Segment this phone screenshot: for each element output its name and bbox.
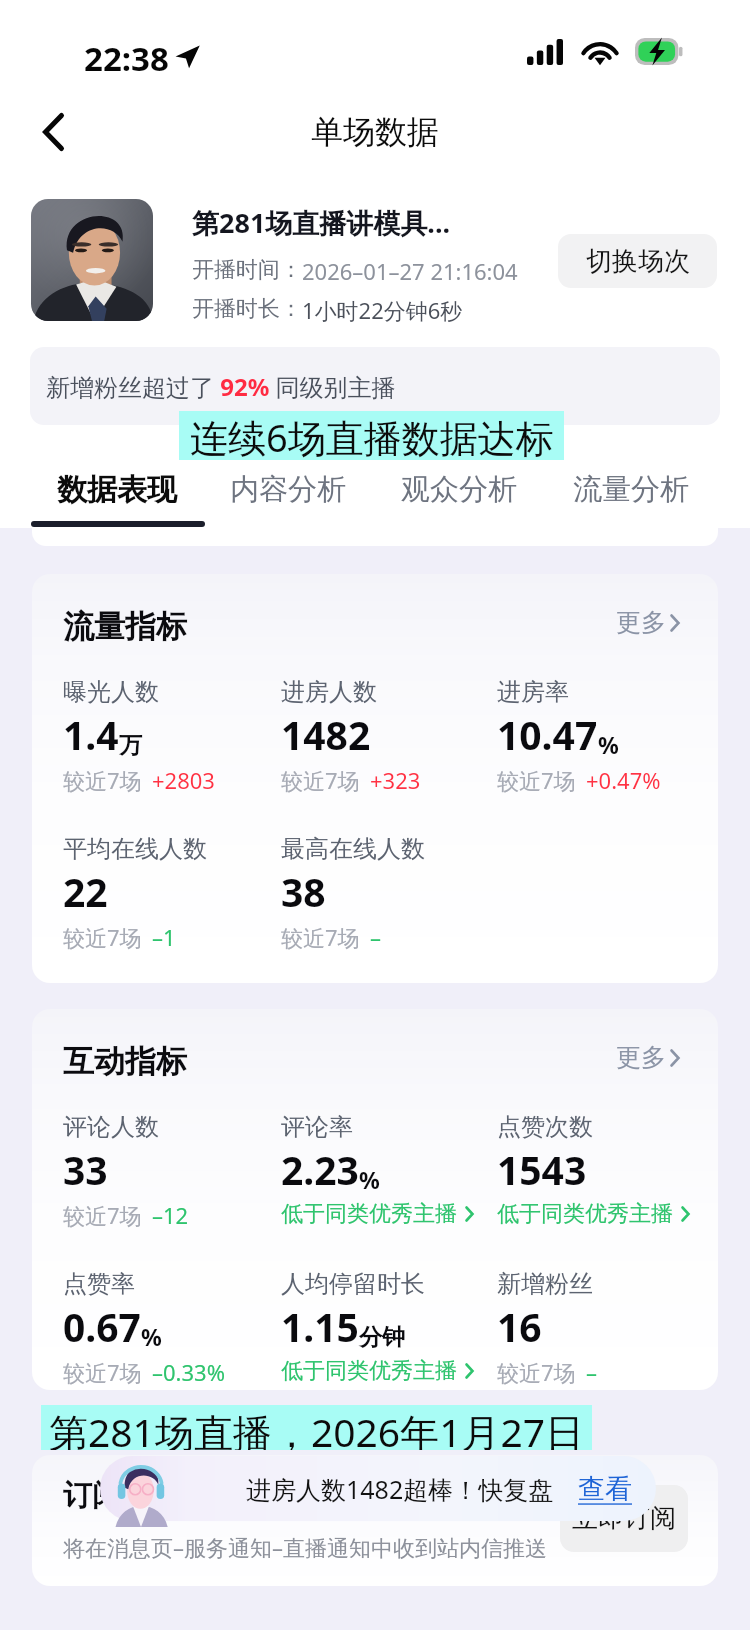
staticText: 低于同类优秀主播	[497, 1200, 673, 1228]
staticText: 较近7场	[281, 922, 360, 952]
staticText: 38	[281, 865, 326, 918]
staticText: 22	[63, 865, 108, 918]
staticText: –	[586, 1357, 598, 1387]
staticText: 万	[119, 731, 142, 760]
staticText: 较近7场	[63, 765, 142, 795]
staticText: 更多	[616, 607, 666, 638]
staticText: –12	[152, 1200, 189, 1230]
staticText: 第281场直播，2026年1月27日	[49, 1405, 585, 1450]
staticText: 开播时间：	[192, 256, 302, 284]
staticText: 流量指标	[63, 607, 187, 646]
button[interactable]: 切换场次	[558, 234, 717, 288]
staticText: 切换场次	[586, 245, 690, 278]
staticText: %	[598, 729, 619, 760]
button[interactable]: Back	[22, 101, 84, 163]
staticText: 较近7场	[497, 1357, 576, 1387]
staticText: 2.23	[281, 1143, 359, 1196]
staticText: 进房率	[497, 677, 569, 707]
staticText: 流量分析	[573, 471, 689, 508]
button[interactable]: 进房人数1482超棒！快复盘复盘	[100, 1456, 656, 1521]
staticText: 1小时22分钟6秒	[302, 295, 463, 325]
staticText: 较近7场	[497, 765, 576, 795]
staticText: +0.47%	[586, 765, 661, 795]
staticText: 连续6场直播数据达标	[190, 411, 554, 460]
button[interactable]: 观众分析	[376, 462, 542, 528]
staticText: –0.33%	[152, 1357, 225, 1387]
staticText: 较近7场	[63, 1200, 142, 1230]
staticText: 分钟	[359, 1323, 405, 1352]
staticText: 开播时长：	[192, 295, 302, 323]
staticText: 较近7场	[63, 1357, 142, 1387]
staticText: 更多	[616, 1042, 666, 1073]
staticText: %	[141, 1321, 162, 1352]
staticText: 平均在线人数	[63, 834, 207, 864]
staticText: 人均停留时长	[281, 1269, 425, 1299]
staticText: +323	[370, 765, 421, 795]
staticText: 22:38	[84, 36, 169, 81]
staticText: 内容分析	[230, 471, 346, 508]
staticText: 低于同类优秀主播	[281, 1357, 457, 1385]
staticText: 数据表现	[57, 471, 177, 509]
button[interactable]: 更多	[616, 607, 680, 638]
button[interactable]: 低于同类优秀主播	[281, 1357, 474, 1385]
staticText: 1.15	[281, 1300, 359, 1353]
staticText: 1.4	[63, 708, 119, 761]
staticText: 0.67	[63, 1300, 141, 1353]
button[interactable]: 新增粉丝超过了 92% 同级别主播	[30, 347, 720, 425]
staticText: –1	[152, 922, 176, 952]
button[interactable]: 立即订阅	[560, 1485, 688, 1552]
staticText: 点赞率	[63, 1269, 135, 1299]
staticText: 16	[497, 1300, 542, 1353]
staticText: 评论人数	[63, 1112, 159, 1142]
staticText: 点赞次数	[497, 1112, 593, 1142]
staticText: 查看	[578, 1472, 632, 1506]
staticText: 新增粉丝超过了 92% 同级别主播	[46, 370, 396, 403]
staticText: 最高在线人数	[281, 834, 425, 864]
staticText: 低于同类优秀主播	[281, 1200, 457, 1228]
staticText: 2026–01–27 21:16:04	[302, 256, 518, 286]
staticText: +2803	[152, 765, 215, 795]
staticText: 进房人数1482超棒！快复盘复盘	[246, 1472, 566, 1506]
button[interactable]: 更多	[616, 1042, 680, 1073]
staticText: –	[370, 922, 382, 952]
button[interactable]: 内容分析	[205, 462, 371, 528]
button[interactable]: 数据表现	[34, 462, 200, 528]
staticText: 1543	[497, 1143, 587, 1196]
staticText: 10.47	[497, 708, 598, 761]
staticText: 将在消息页–服务通知–直播通知中收到站内信推送	[63, 1532, 548, 1562]
staticText: 立即订阅	[572, 1502, 676, 1535]
staticText: 1482	[281, 708, 371, 761]
staticText: 单场数据	[311, 112, 439, 152]
staticText: 订阅开播提醒	[63, 1477, 237, 1514]
staticText: 曝光人数	[63, 677, 159, 707]
button[interactable]: 低于同类优秀主播	[497, 1200, 690, 1228]
button[interactable]: 流量分析	[548, 462, 714, 528]
staticText: 评论率	[281, 1112, 353, 1142]
staticText: %	[359, 1164, 380, 1195]
staticText: 观众分析	[401, 471, 517, 508]
staticText: 较近7场	[63, 922, 142, 952]
staticText: 第281场直播讲模具...	[192, 204, 451, 241]
button[interactable]: 低于同类优秀主播	[281, 1200, 474, 1228]
staticText: 进房人数	[281, 677, 377, 707]
staticText: 33	[63, 1143, 108, 1196]
staticText: 较近7场	[281, 765, 360, 795]
staticText: 新增粉丝	[497, 1269, 593, 1299]
staticText: 互动指标	[63, 1042, 187, 1081]
